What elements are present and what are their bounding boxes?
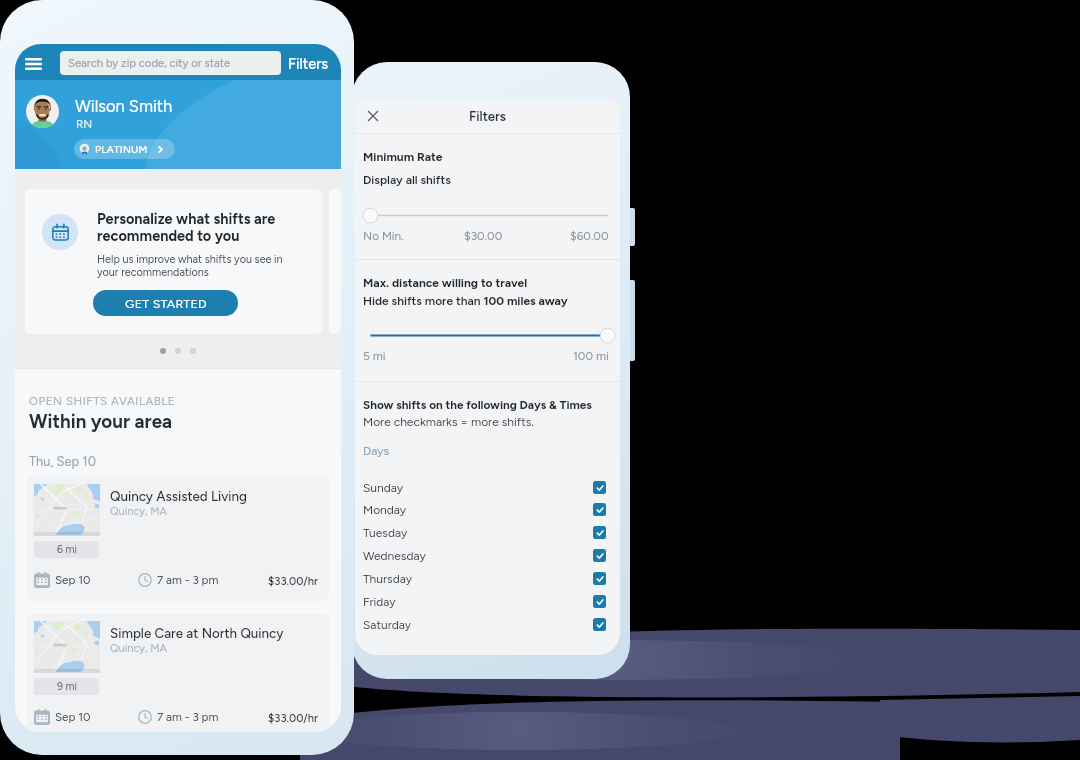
button[interactable]: Saturday (363, 613, 606, 636)
staticText: Sep 10 (55, 710, 91, 724)
staticText: Quincy, MA (110, 505, 167, 518)
staticText: Days (363, 444, 390, 458)
staticText: Help us improve what shifts you see in y… (97, 253, 283, 278)
staticText: Show shifts on the following Days & Time… (363, 398, 592, 412)
staticText: 100 mi (573, 349, 609, 363)
button[interactable]: Quincy Assisted Living (27, 477, 329, 601)
staticText: $30.00 (464, 229, 503, 243)
staticText: Tuesday (363, 526, 408, 540)
staticText: Quincy Assisted Living (110, 488, 247, 504)
staticText: Monday (363, 503, 407, 517)
staticText: Within your area (29, 410, 173, 433)
button[interactable]: Simple Care at North Quincy (27, 614, 329, 732)
button[interactable]: Sunday (363, 476, 606, 499)
staticText: Thursday (363, 572, 413, 586)
staticText: Search by zip code, city or state (68, 56, 231, 70)
staticText: Filters (288, 55, 328, 72)
staticText: $33.00/hr (268, 574, 319, 587)
staticText: Hide shifts more than 100 miles away (363, 294, 568, 308)
staticText: Thu, Sep 10 (29, 454, 96, 469)
staticText: No Min. (363, 229, 404, 243)
button[interactable]: Profile photo (26, 95, 59, 128)
button[interactable]: PLATINUM (74, 139, 175, 159)
staticText: Sunday (363, 481, 404, 495)
button[interactable]: Monday (363, 498, 606, 521)
staticText: 6 mi (57, 543, 77, 556)
button[interactable]: GET STARTED (93, 290, 238, 316)
staticText: 7 am - 3 pm (157, 710, 219, 724)
staticText: Filters (469, 108, 506, 124)
button[interactable]: Wednesday (363, 544, 606, 567)
staticText: Simple Care at North Quincy (110, 625, 284, 641)
button[interactable]: Personalize what shifts are recommended … (25, 189, 322, 334)
staticText: $60.00 (570, 229, 609, 243)
staticText: Saturday (363, 618, 412, 632)
button[interactable]: Close (365, 108, 381, 124)
staticText: Wilson Smith (75, 96, 173, 116)
staticText: PLATINUM (95, 143, 148, 155)
staticText: 9 mi (57, 680, 77, 693)
staticText: 7 am - 3 pm (157, 573, 219, 587)
button[interactable]: Filters (286, 52, 330, 75)
staticText: Friday (363, 595, 396, 609)
staticText: Personalize what shifts are recommended … (97, 210, 276, 244)
staticText: Minimum Rate (363, 150, 443, 164)
staticText: GET STARTED (125, 296, 207, 311)
button[interactable]: Menu (23, 54, 43, 74)
staticText: Quincy, MA (110, 642, 167, 655)
staticText: RN (76, 117, 93, 131)
staticText: Max. distance willing to travel (363, 276, 528, 290)
staticText: $33.00/hr (268, 711, 319, 724)
staticText: OPEN SHIFTS AVAILABLE (29, 394, 176, 408)
button[interactable]: Tuesday (363, 521, 606, 544)
staticText: Sep 10 (55, 573, 91, 587)
button[interactable]: Search by zip code, city or state (60, 51, 281, 75)
button[interactable]: Thursday (363, 567, 606, 590)
button[interactable]: Friday (363, 590, 606, 613)
staticText: More checkmarks = more shifts. (363, 415, 534, 429)
staticText: Wednesday (363, 549, 426, 563)
staticText: Display all shifts (363, 173, 451, 187)
staticText: 5 mi (363, 349, 386, 363)
